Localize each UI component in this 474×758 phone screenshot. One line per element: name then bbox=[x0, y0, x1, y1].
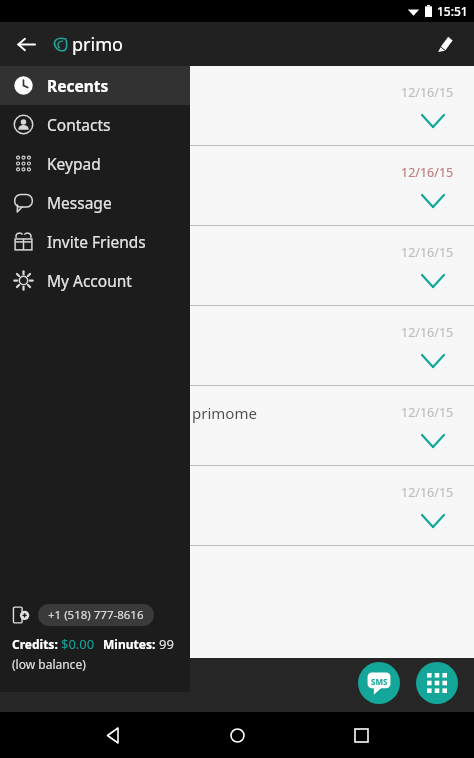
staticText: Credits: bbox=[12, 636, 61, 652]
button[interactable]: 12/16/15 bbox=[190, 306, 474, 385]
button[interactable]: +1 (518) 777-8616 bbox=[38, 604, 154, 626]
staticText: primome bbox=[192, 403, 257, 423]
staticText: 12/16/15 bbox=[401, 324, 454, 341]
staticText: 12/16/15 bbox=[401, 84, 454, 101]
staticText: 15:51 bbox=[437, 3, 468, 19]
button[interactable]: Expand bbox=[418, 346, 448, 376]
button[interactable]: Send SMS bbox=[358, 662, 400, 704]
button[interactable]: Contacts bbox=[0, 105, 190, 144]
button[interactable]: Dial pad bbox=[416, 662, 458, 704]
button[interactable]: Back bbox=[93, 715, 133, 755]
button[interactable]: 12/16/15 bbox=[190, 466, 474, 545]
staticText: (low balance) bbox=[12, 656, 86, 672]
staticText: Minutes: bbox=[103, 636, 159, 652]
staticText: $0.00 bbox=[61, 635, 95, 653]
button[interactable]: Expand bbox=[418, 506, 448, 536]
button[interactable]: 12/16/15 bbox=[190, 66, 474, 145]
button[interactable]: primome bbox=[190, 386, 474, 465]
staticText: 99 bbox=[159, 635, 174, 653]
staticText: My Account bbox=[47, 270, 132, 291]
button[interactable]: Compose bbox=[426, 25, 464, 63]
staticText: primo bbox=[72, 32, 123, 57]
button[interactable]: Recents bbox=[0, 66, 190, 105]
staticText: 12/16/15 bbox=[401, 244, 454, 261]
staticText: SMS bbox=[371, 676, 388, 687]
staticText: Keypad bbox=[47, 153, 101, 174]
staticText: Contacts bbox=[47, 114, 111, 135]
button[interactable]: Back bbox=[8, 26, 44, 62]
button[interactable]: Expand bbox=[418, 266, 448, 296]
button[interactable]: Message bbox=[0, 183, 190, 222]
button[interactable]: Expand bbox=[418, 426, 448, 456]
staticText: 12/16/15 bbox=[401, 484, 454, 501]
button[interactable]: Recent apps bbox=[341, 715, 381, 755]
button[interactable]: 12/16/15 bbox=[190, 146, 474, 225]
button[interactable]: Home bbox=[217, 715, 257, 755]
button[interactable]: Expand bbox=[418, 106, 448, 136]
staticText: Recents bbox=[47, 75, 109, 96]
button[interactable]: Invite Friends bbox=[0, 222, 190, 261]
staticText: Invite Friends bbox=[47, 231, 146, 252]
staticText: 12/16/15 bbox=[401, 404, 454, 421]
button[interactable]: Expand bbox=[418, 186, 448, 216]
button[interactable]: Keypad bbox=[0, 144, 190, 183]
staticText: +1 (518) 777-8616 bbox=[48, 607, 144, 623]
button[interactable]: 12/16/15 bbox=[190, 226, 474, 305]
staticText: Message bbox=[47, 192, 112, 213]
staticText: 12/16/15 bbox=[401, 164, 454, 181]
button[interactable]: My Account bbox=[0, 261, 190, 300]
